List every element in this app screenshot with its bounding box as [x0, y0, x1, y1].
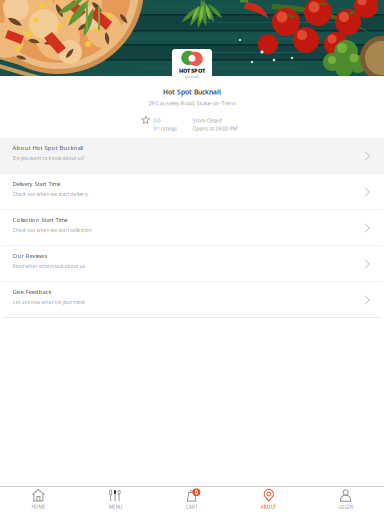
staticText: Check out when we start delivery.: [12, 191, 88, 197]
button[interactable]: LOGIN: [307, 487, 384, 512]
staticText: CART: [186, 504, 198, 510]
staticText: LOGIN: [339, 504, 353, 510]
staticText: About Hot Spot Bucknall: [12, 144, 82, 152]
staticText: Opens at 04:00 PM: [192, 125, 237, 132]
staticText: Do you want to know about us?: [12, 155, 84, 161]
staticText: 29 Causeley Road, Stoke-on-Trent: [148, 99, 235, 107]
staticText: Check out when we start collection.: [12, 227, 92, 233]
staticText: 0.0: [153, 117, 160, 124]
staticText: HOME: [31, 504, 45, 510]
staticText: Delivery Start Time: [12, 180, 60, 188]
button[interactable]: Give Feedback: [0, 282, 384, 318]
staticText: ABOUT: [261, 504, 277, 510]
staticText: Give Feedback: [12, 288, 51, 296]
staticText: 0+ ratings: [153, 125, 177, 132]
staticText: Store Closed: [192, 117, 221, 124]
button[interactable]: Collection Start Time: [0, 210, 384, 246]
staticText: Let us know what's in your mind.: [12, 299, 85, 305]
button[interactable]: CART: [154, 487, 230, 512]
staticText: Collection Start Time: [12, 216, 67, 224]
staticText: Our Reviews: [12, 252, 47, 260]
button[interactable]: About Hot Spot Bucknall: [0, 138, 384, 174]
button[interactable]: ABOUT: [230, 487, 307, 512]
button[interactable]: Delivery Start Time: [0, 174, 384, 210]
button[interactable]: Our Reviews: [0, 246, 384, 282]
staticText: Hot Spot Bucknall: [163, 87, 221, 97]
button[interactable]: HOME: [0, 487, 77, 512]
staticText: MENU: [109, 504, 122, 510]
staticText: bucknall: [185, 74, 199, 79]
staticText: HOT SPOT: [179, 67, 205, 74]
staticText: Read what others said about us.: [12, 263, 85, 269]
button[interactable]: MENU: [77, 487, 154, 512]
